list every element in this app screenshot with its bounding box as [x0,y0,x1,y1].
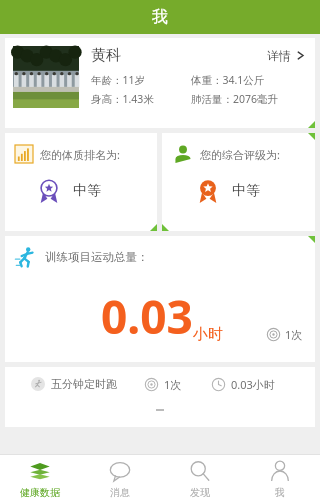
staticText: 您的体质排名为: [40,147,120,162]
staticText: 五分钟定时跑 [51,377,117,391]
other: 我 [269,460,291,482]
other: 发现 [189,460,211,482]
staticText: 详情 [267,48,291,63]
button[interactable]: 您的体质排名为: [5,133,157,231]
other: 消息 [109,460,131,482]
staticText: 我 [275,486,285,499]
staticText: 0.03小时 [231,377,275,392]
staticText: 我 [152,7,168,27]
staticText: 1次 [285,327,303,342]
staticText: 1次 [164,377,182,392]
staticText: 肺活量：2076毫升 [191,92,279,106]
staticText: 发现 [190,486,210,499]
staticText: 体重：34.1公斤 [191,73,265,87]
staticText: 中等 [232,182,260,200]
button[interactable]: 您的综合评级为: [162,133,315,231]
staticText: 训练项目运动总量： [45,250,149,264]
staticText: 小时 [193,325,223,344]
staticText: 消息 [110,486,130,499]
staticText: 您的综合评级为: [200,147,280,162]
staticText: 年龄：11岁 [91,73,146,87]
button[interactable]: 我 [240,455,320,504]
staticText: 中等 [73,182,101,200]
button[interactable]: 消息 [80,455,160,504]
button[interactable]: 详情 [265,46,307,65]
staticText: 身高：1.43米 [91,92,154,106]
staticText: 0.03 [101,285,193,348]
staticText: 黄科 [91,46,121,65]
button[interactable]: 健康数据 [0,455,80,504]
button[interactable]: 发现 [160,455,240,504]
staticText: 健康数据 [20,486,60,499]
button[interactable]: 五分钟定时跑 [5,367,315,401]
